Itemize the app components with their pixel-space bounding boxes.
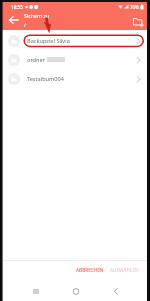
button[interactable]: Backupziel Silvia <box>2 31 147 50</box>
staticText: ordner <box>27 56 45 64</box>
staticText: 76% <box>130 4 139 10</box>
button[interactable]: Testalbum004 <box>2 69 147 88</box>
staticText: Backupziel Silvia <box>27 37 70 45</box>
button[interactable]: Create new folder <box>127 11 147 30</box>
staticText: 18:55 <box>11 4 23 10</box>
button[interactable]: Home <box>51 279 99 301</box>
staticText: ABBRECHEN <box>76 267 104 273</box>
button[interactable]: Recent apps <box>2 279 51 301</box>
staticText: AUSWÄHLEN <box>110 267 139 273</box>
button[interactable]: Back <box>2 11 22 30</box>
button[interactable]: AUSWÄHLEN <box>108 263 141 277</box>
button[interactable]: ordner <box>2 50 147 69</box>
button[interactable]: Back <box>99 279 147 301</box>
staticText: Testalbum004 <box>27 75 64 83</box>
staticText: Sichern zu <box>24 13 50 20</box>
button[interactable]: ABBRECHEN <box>74 263 106 277</box>
staticText: / <box>24 22 26 29</box>
